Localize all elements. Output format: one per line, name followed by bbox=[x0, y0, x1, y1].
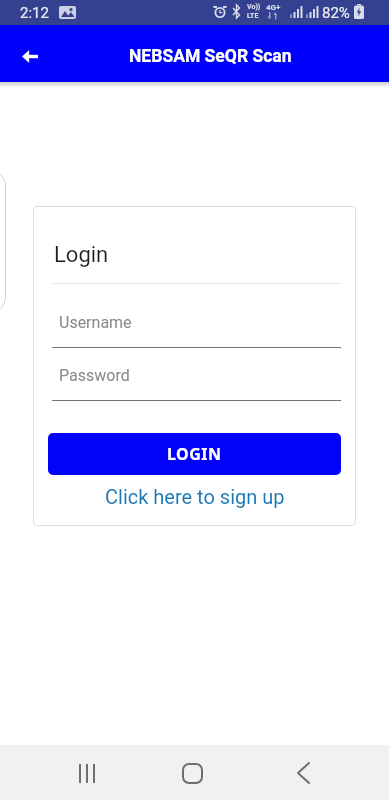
staticText: Vo)) bbox=[247, 3, 261, 11]
button[interactable] bbox=[65, 751, 109, 795]
staticText: LOGIN bbox=[167, 443, 222, 465]
staticText: Username bbox=[59, 313, 132, 332]
button[interactable]: LOGIN bbox=[48, 433, 341, 475]
staticText: 82% bbox=[322, 4, 350, 22]
staticText: Password bbox=[59, 366, 130, 385]
button[interactable] bbox=[8, 34, 52, 78]
staticText: LTE bbox=[247, 12, 259, 20]
staticText: Login bbox=[54, 242, 109, 268]
staticText: 4G+ bbox=[266, 3, 281, 12]
button[interactable]: Click here to sign up bbox=[33, 481, 356, 511]
button[interactable] bbox=[281, 751, 325, 795]
staticText: NEBSAM SeQR Scan bbox=[129, 46, 292, 67]
staticText: 2:12 bbox=[20, 4, 49, 22]
button[interactable] bbox=[170, 751, 214, 795]
staticText: Click here to sign up bbox=[105, 485, 285, 508]
